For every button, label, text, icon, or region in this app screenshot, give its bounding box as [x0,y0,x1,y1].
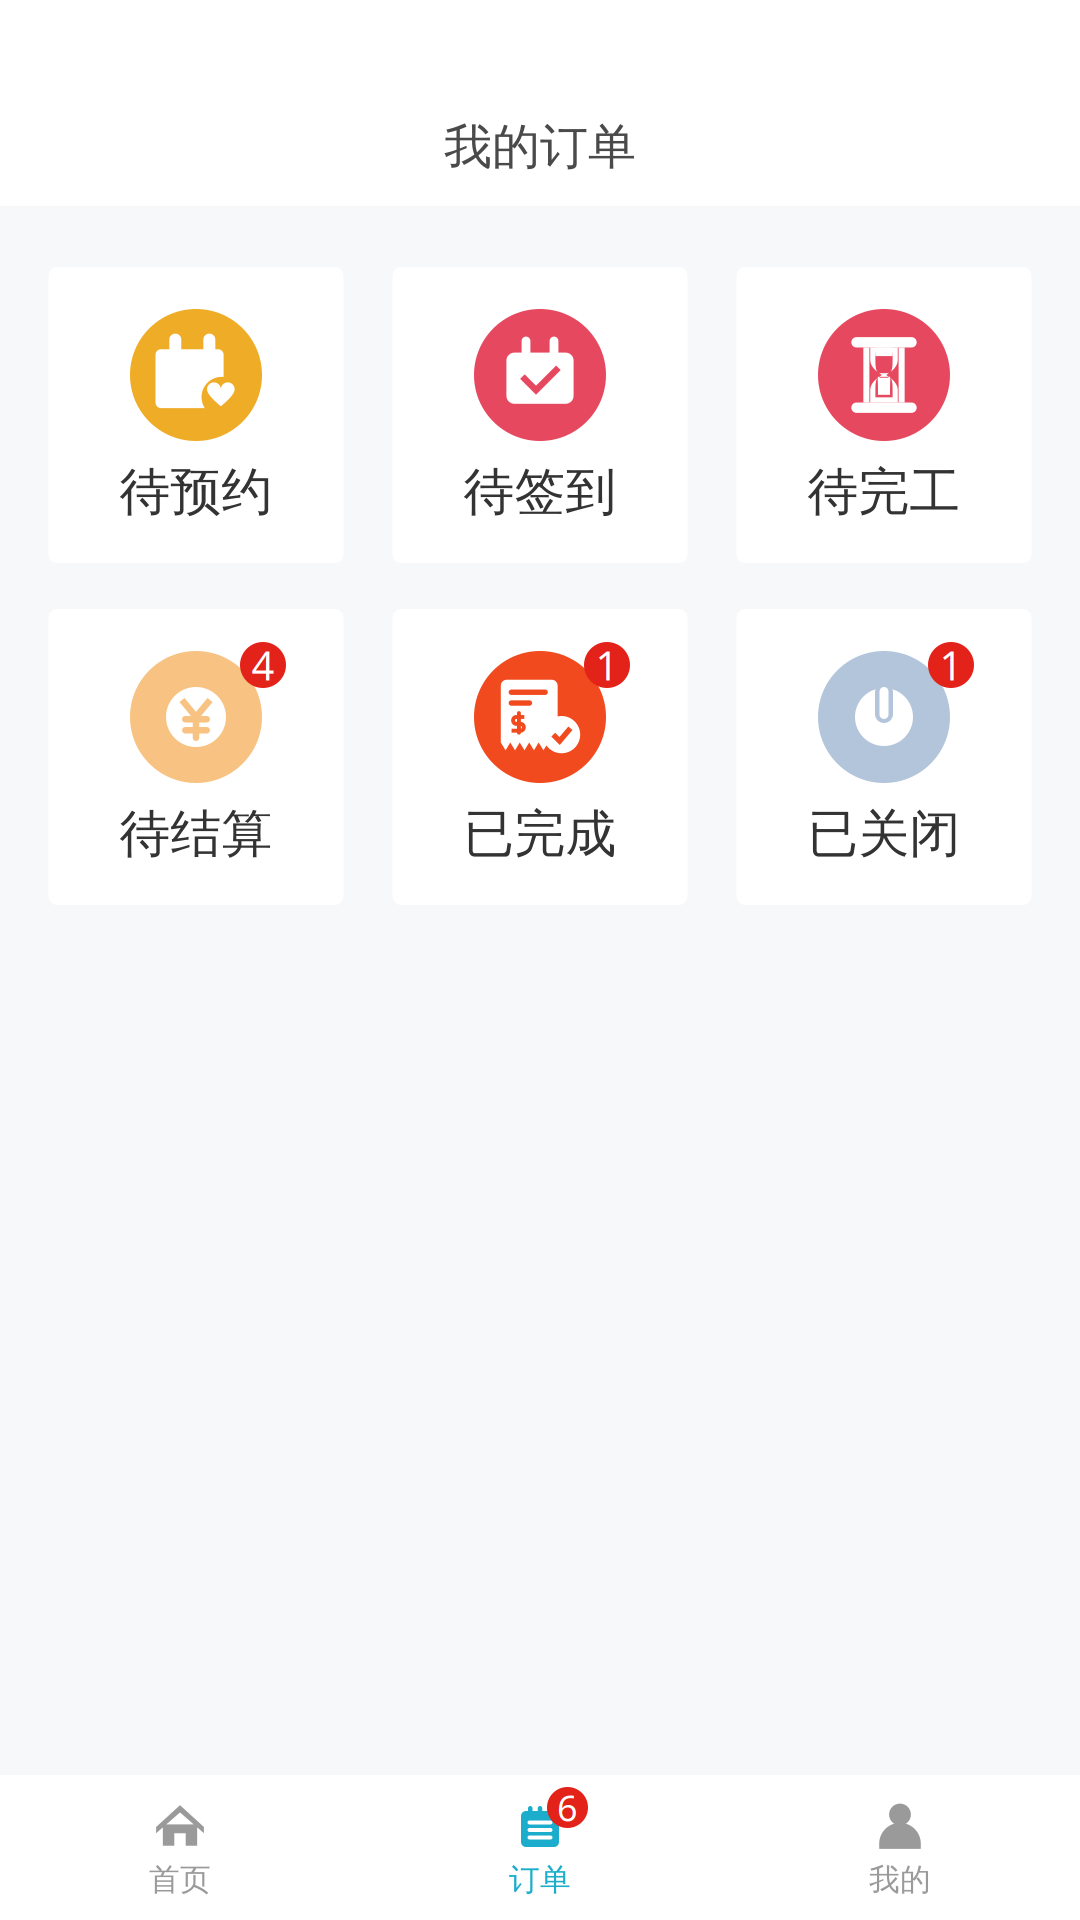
staticText: 待签到 [463,461,616,523]
staticText: 待结算 [119,803,272,865]
button[interactable]: 首页 [0,1775,360,1920]
button[interactable]: 1 [736,609,1031,905]
staticText: 我的 [869,1861,931,1899]
staticText: 订单 [509,1861,571,1899]
button[interactable]: 4 [48,609,343,905]
staticText: 待完工 [807,461,960,523]
button[interactable]: 6 [360,1775,720,1920]
staticText: 4 [251,638,274,691]
staticText: 首页 [149,1861,211,1899]
staticText: 我的订单 [444,117,636,176]
button[interactable]: 1 [392,609,687,905]
staticText: 1 [595,638,618,691]
staticText: 已完成 [463,803,616,865]
button[interactable]: 待预约 [48,267,343,563]
staticText: 1 [939,638,962,691]
staticText: 已关闭 [807,803,960,865]
button[interactable]: 我的 [720,1775,1080,1920]
staticText: 待预约 [119,461,272,523]
button[interactable]: 待签到 [392,267,687,563]
button[interactable]: 待完工 [736,267,1031,563]
staticText: 6 [557,1784,578,1831]
